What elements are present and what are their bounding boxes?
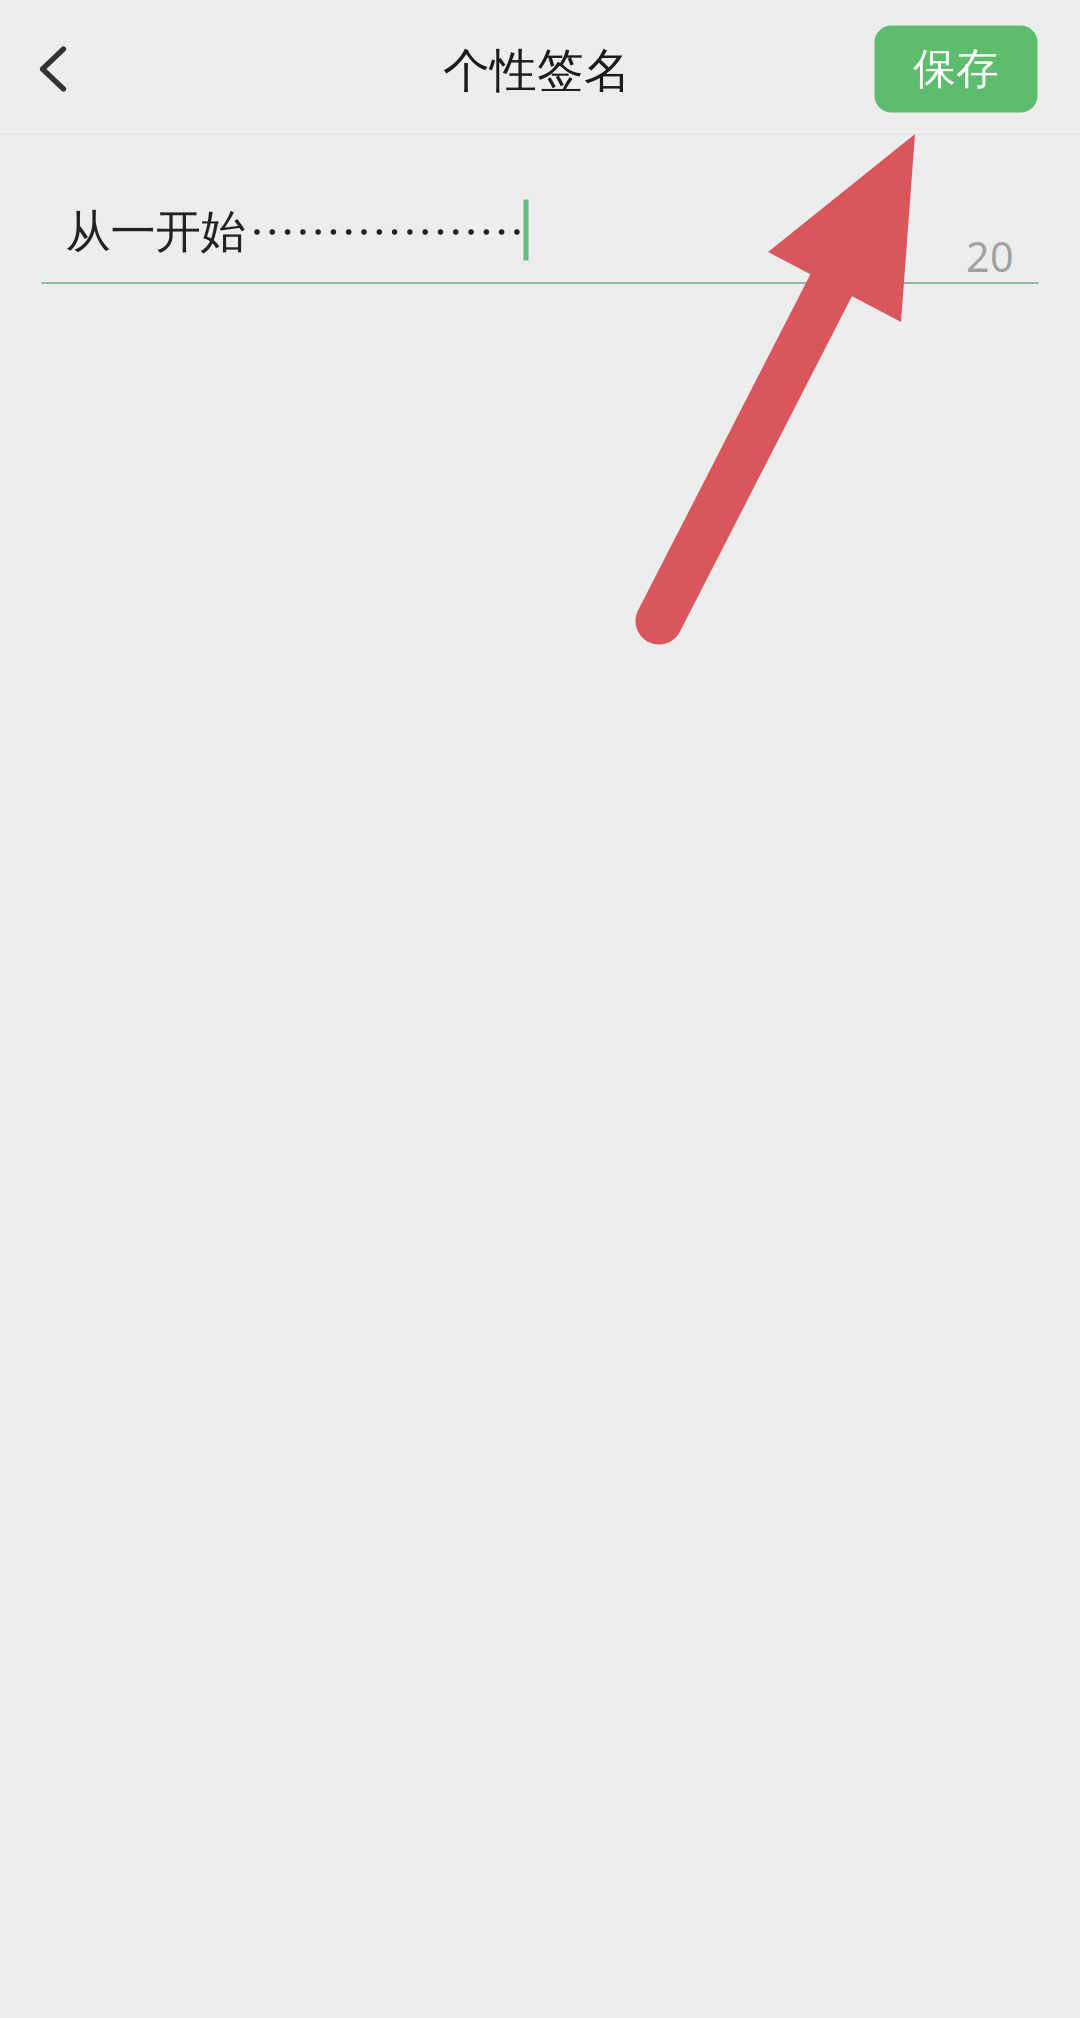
button[interactable]: 保存 xyxy=(874,25,1037,112)
staticText: 个性签名 xyxy=(443,42,631,100)
staticText: 保存 xyxy=(913,43,999,95)
button[interactable]: Signature text field xyxy=(40,135,1037,285)
button[interactable]: Back xyxy=(0,3,113,135)
staticText: 20 xyxy=(966,229,1014,283)
staticText: 从一开始 xyxy=(65,204,245,260)
